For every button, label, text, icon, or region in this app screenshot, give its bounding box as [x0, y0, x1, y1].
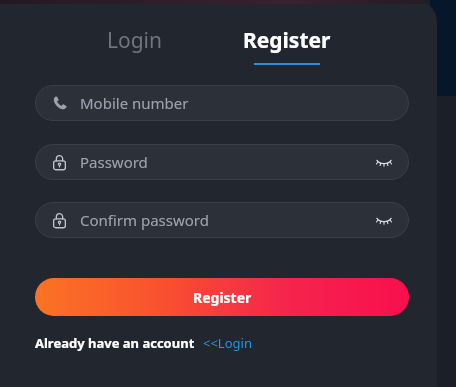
staticText: Confirm password	[80, 210, 209, 230]
button[interactable]: Password	[35, 144, 409, 180]
button[interactable]: Mobile number	[35, 85, 409, 121]
button[interactable]: Register	[233, 22, 341, 69]
button[interactable]: Confirm password	[35, 202, 409, 238]
staticText: Password	[80, 152, 148, 172]
staticText: Register	[193, 288, 252, 307]
staticText: Login	[107, 26, 163, 55]
button[interactable]: <<Login	[203, 334, 252, 352]
button[interactable]: Login	[97, 22, 173, 59]
button[interactable]: Show password	[373, 209, 395, 231]
staticText: Register	[243, 26, 331, 55]
button[interactable]: Register	[35, 278, 409, 316]
staticText: Mobile number	[80, 93, 189, 113]
button[interactable]: Show password	[373, 151, 395, 173]
staticText: Already have an account	[35, 334, 195, 352]
staticText: <<Login	[203, 334, 252, 352]
